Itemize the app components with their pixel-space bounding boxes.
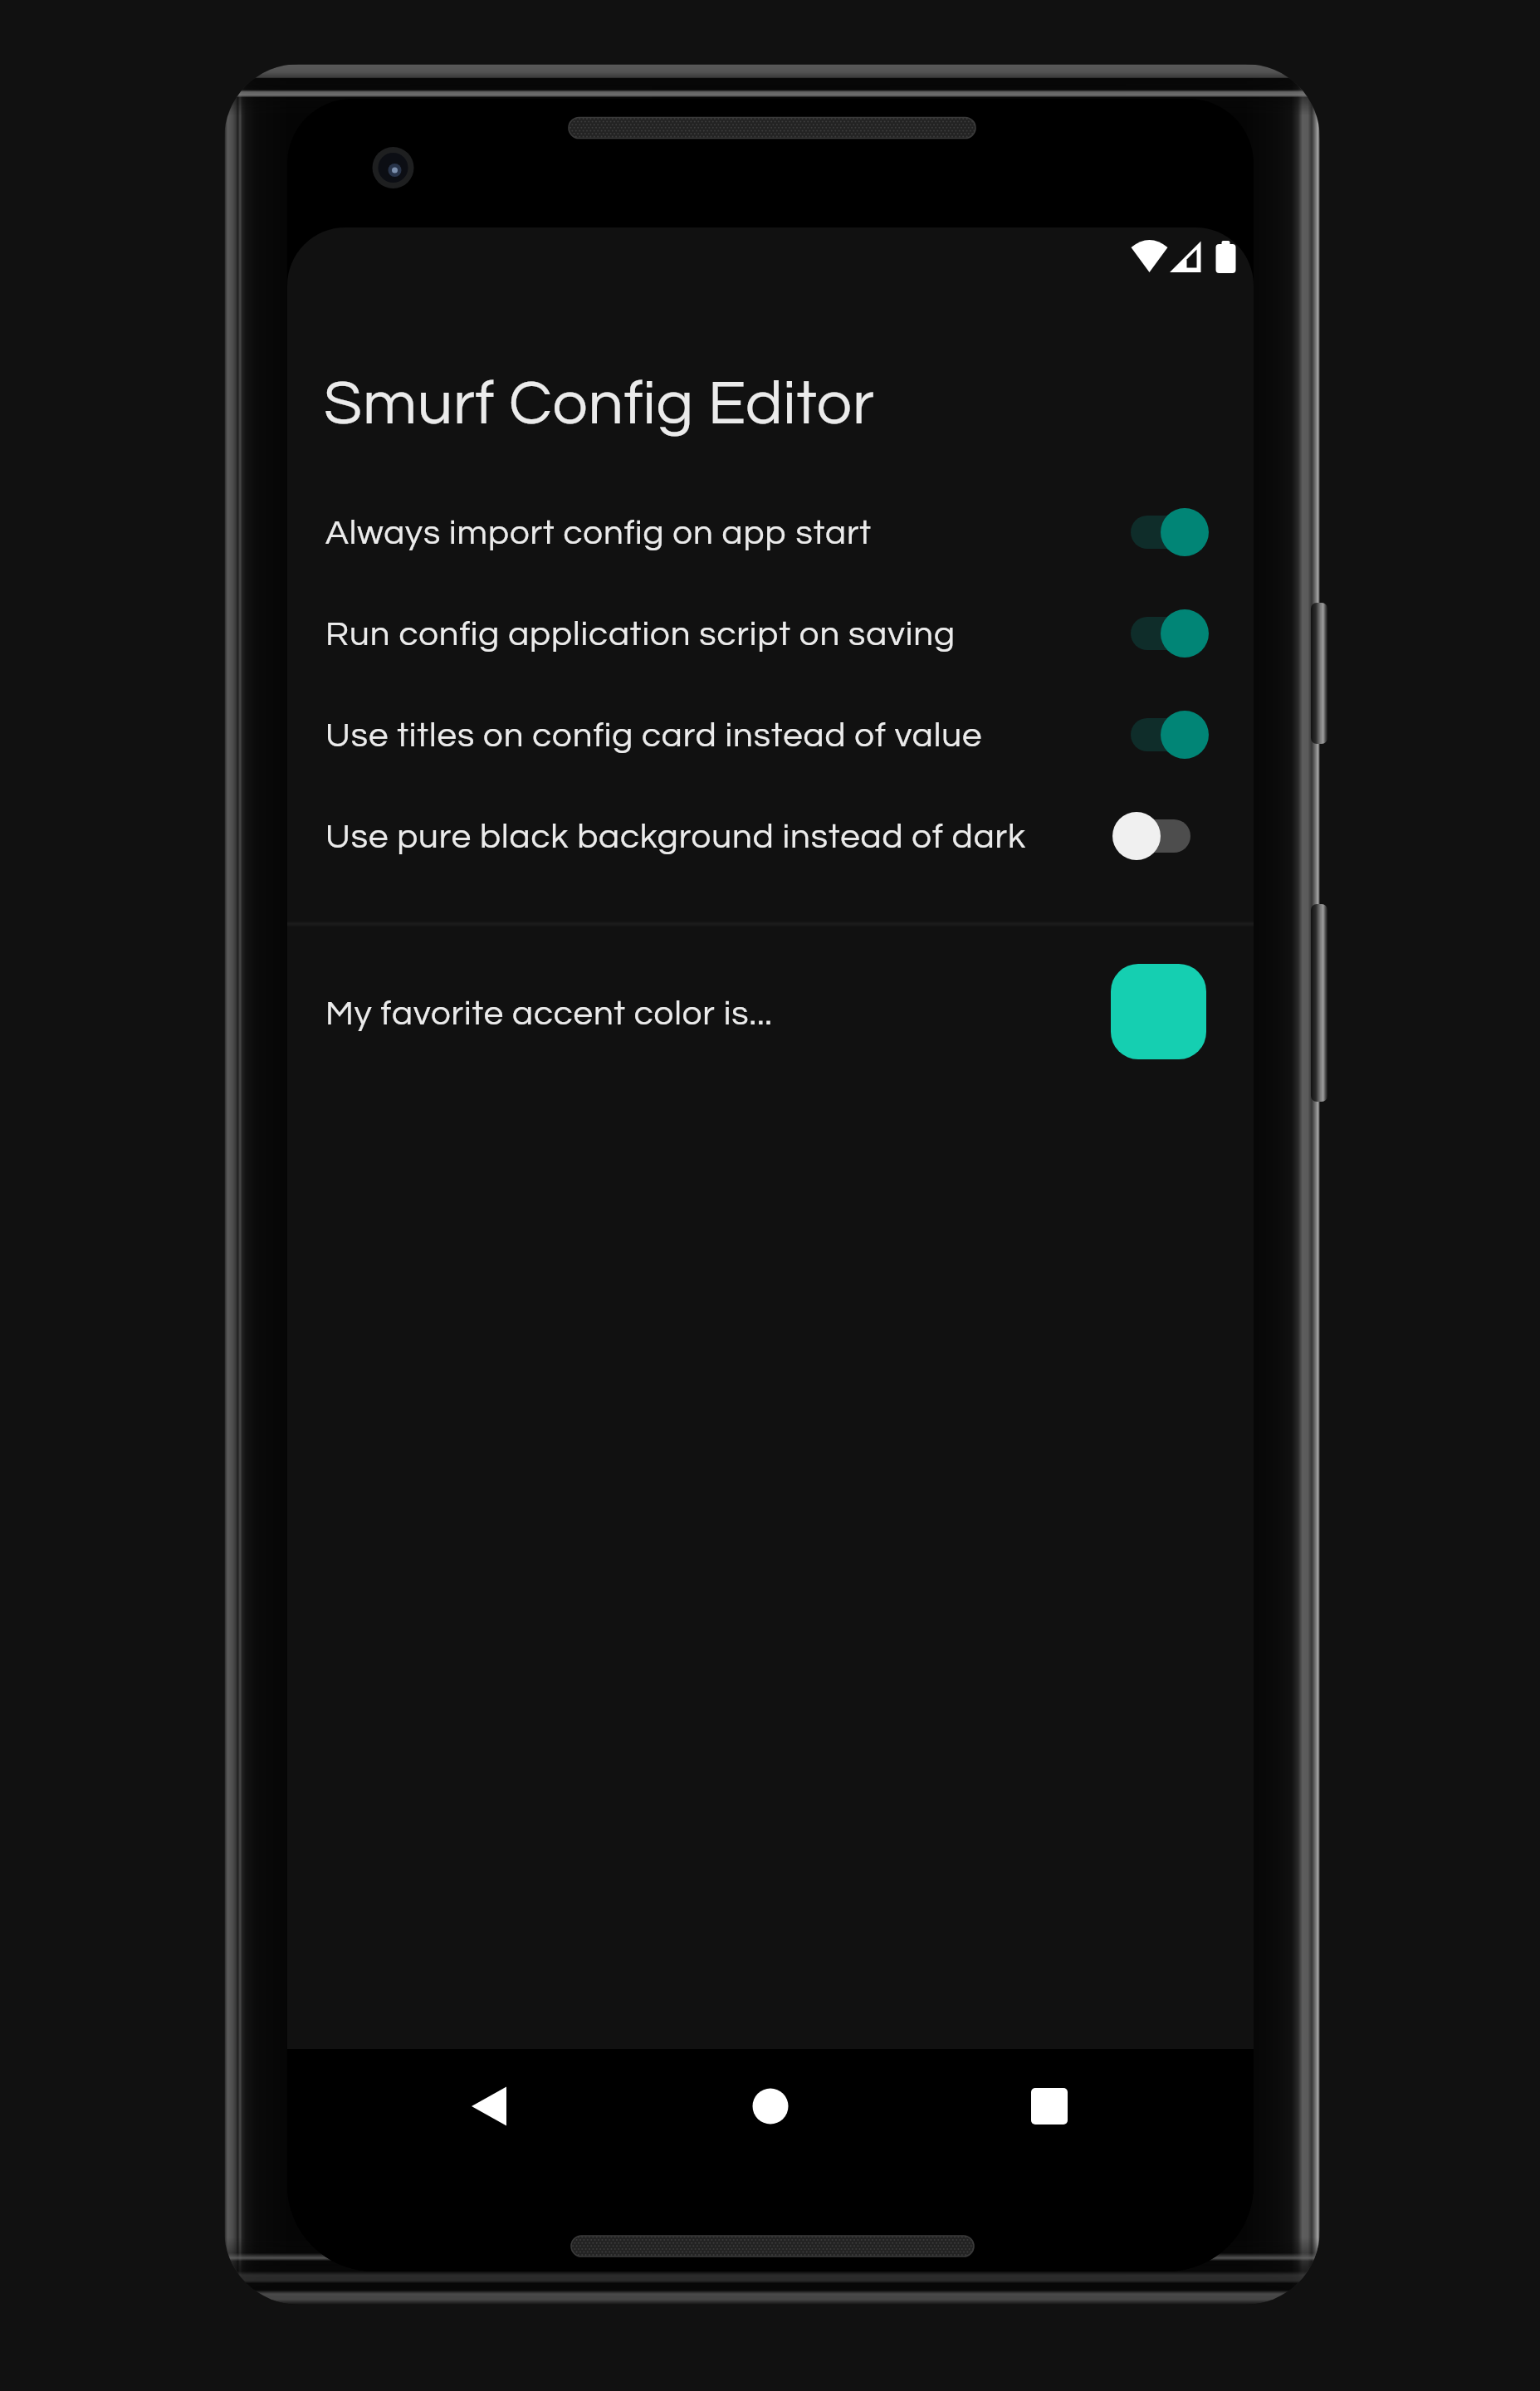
staticText: My favorite accent color is... bbox=[325, 996, 1111, 1032]
button[interactable]: Setting enabled bbox=[1131, 709, 1209, 760]
staticText: Smurf Config Editor bbox=[324, 372, 875, 436]
button[interactable]: Back bbox=[439, 2056, 539, 2156]
button[interactable]: Home bbox=[721, 2056, 820, 2156]
button[interactable]: Setting disabled bbox=[1112, 810, 1190, 862]
button[interactable]: My favorite accent color is... bbox=[287, 927, 1254, 1102]
button[interactable]: Use titles on config card instead of val… bbox=[287, 685, 1254, 786]
button[interactable]: Pick accent colour bbox=[1111, 964, 1206, 1059]
button[interactable]: Setting enabled bbox=[1131, 608, 1209, 659]
button[interactable]: Run config application script on saving bbox=[287, 584, 1254, 685]
button[interactable]: Setting enabled bbox=[1131, 506, 1209, 558]
button[interactable]: Recent apps bbox=[1000, 2056, 1099, 2156]
staticText: Run config application script on saving bbox=[325, 617, 1131, 653]
staticText: Always import config on app start bbox=[325, 516, 1131, 551]
button[interactable]: Use pure black background instead of dar… bbox=[287, 786, 1254, 887]
staticText: Use pure black background instead of dar… bbox=[325, 819, 1112, 855]
staticText: Use titles on config card instead of val… bbox=[325, 718, 1131, 754]
button[interactable]: Always import config on app start bbox=[287, 482, 1254, 584]
